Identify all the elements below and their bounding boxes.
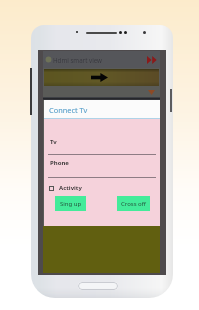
button[interactable]: Cross off (117, 196, 150, 211)
staticText: Hdmi smart view (53, 56, 102, 64)
staticText: Sing up (60, 200, 82, 208)
staticText: Tv (50, 138, 57, 146)
staticText: Phone (50, 159, 69, 167)
button[interactable]: Activity (49, 184, 82, 192)
button[interactable]: App icon (43, 51, 160, 68)
staticText: Connect Tv (49, 105, 88, 115)
staticText: Activity (59, 184, 82, 192)
other: App icon (45, 56, 52, 63)
button[interactable]: Sing up (55, 196, 86, 211)
other: Fast forward (147, 56, 157, 64)
button[interactable]: Next (44, 69, 159, 86)
button[interactable]: Home (78, 282, 118, 290)
other: Next (91, 73, 108, 82)
staticText: Cross off (121, 200, 146, 208)
